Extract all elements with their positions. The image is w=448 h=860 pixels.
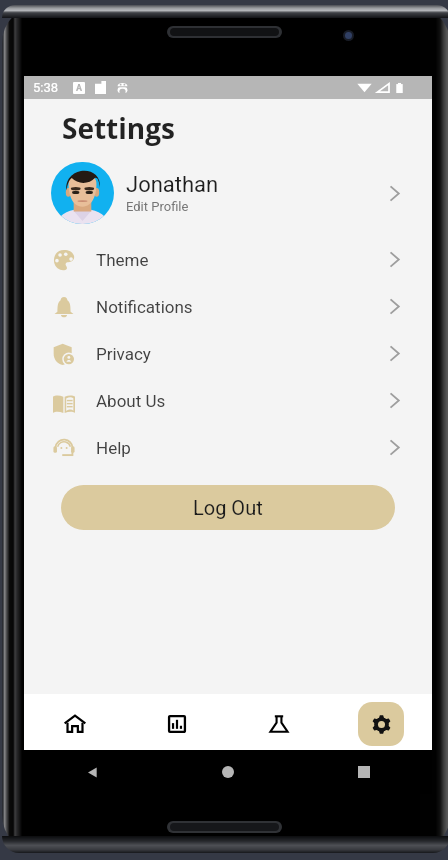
staticText: Settings <box>62 109 175 147</box>
staticText: 5:38 <box>33 80 59 95</box>
button[interactable]: Help <box>24 424 432 471</box>
staticText: Notifications <box>96 297 193 317</box>
staticText: A <box>76 83 83 94</box>
button[interactable]: Experiments <box>228 694 330 750</box>
button[interactable]: Back <box>24 750 160 794</box>
button[interactable]: Notifications <box>24 283 432 330</box>
button[interactable]: Statistics <box>126 694 228 750</box>
button[interactable]: Jonathan <box>24 162 432 224</box>
staticText: Log Out <box>193 496 263 519</box>
button[interactable]: Recent apps <box>296 750 432 794</box>
staticText: Privacy <box>96 344 151 364</box>
button[interactable]: Theme <box>24 236 432 283</box>
button[interactable]: Log Out <box>61 485 395 530</box>
staticText: Help <box>96 438 131 458</box>
staticText: About Us <box>96 391 166 411</box>
button[interactable]: Home <box>24 694 126 750</box>
button[interactable]: Home <box>160 750 296 794</box>
button[interactable]: About Us <box>24 377 432 424</box>
button[interactable]: Settings <box>358 702 404 746</box>
button[interactable]: Privacy <box>24 330 432 377</box>
staticText: Edit Profile <box>126 199 189 214</box>
staticText: Theme <box>96 250 149 270</box>
staticText: Jonathan <box>126 172 219 198</box>
